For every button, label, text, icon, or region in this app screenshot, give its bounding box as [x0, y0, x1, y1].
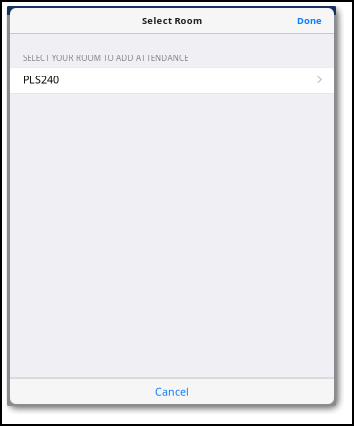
staticText: SELECT YOUR ROOM TO ADD ATTENDANCE [23, 52, 188, 63]
button[interactable]: PLS240 [10, 68, 334, 93]
staticText: Select Room [142, 14, 202, 27]
button[interactable]: Cancel [10, 379, 334, 404]
staticText: Cancel [155, 384, 189, 399]
button[interactable]: Done [291, 8, 328, 33]
staticText: PLS240 [23, 72, 59, 86]
staticText: Done [297, 14, 322, 27]
